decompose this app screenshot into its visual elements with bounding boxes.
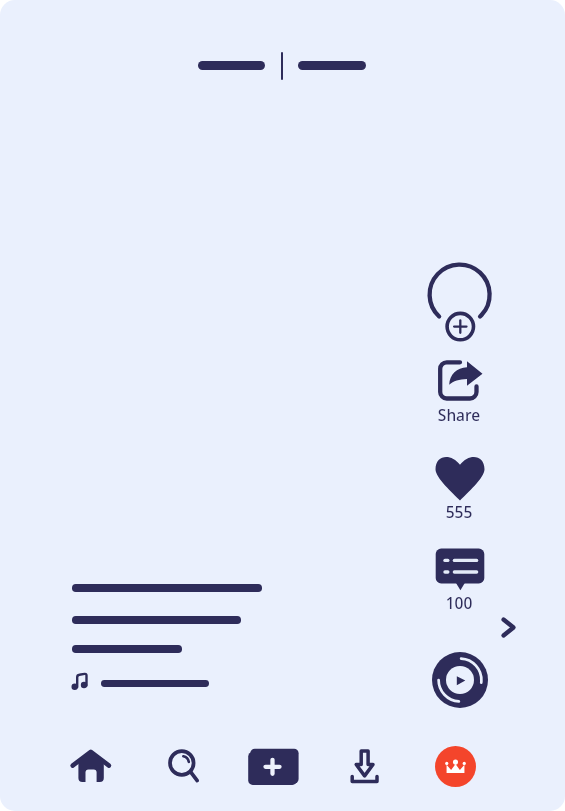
button[interactable]: Search xyxy=(164,746,202,786)
button[interactable]: Create xyxy=(246,746,300,786)
button[interactable]: Download xyxy=(348,746,380,786)
button[interactable]: Comments xyxy=(433,546,487,594)
button[interactable]: Follow xyxy=(445,311,476,342)
button[interactable]: Following xyxy=(198,61,265,70)
staticText: 100 xyxy=(429,592,489,613)
button[interactable]: Like xyxy=(433,453,487,503)
button[interactable]: For You xyxy=(298,61,366,70)
button[interactable]: Music xyxy=(431,651,489,709)
button[interactable]: Profile xyxy=(426,261,494,329)
button[interactable]: Premium xyxy=(435,746,476,787)
button[interactable]: Home xyxy=(69,748,111,786)
staticText: 555 xyxy=(429,501,489,522)
button[interactable]: Share xyxy=(434,356,486,402)
button[interactable]: Next xyxy=(494,612,524,642)
staticText: Share xyxy=(429,404,489,425)
